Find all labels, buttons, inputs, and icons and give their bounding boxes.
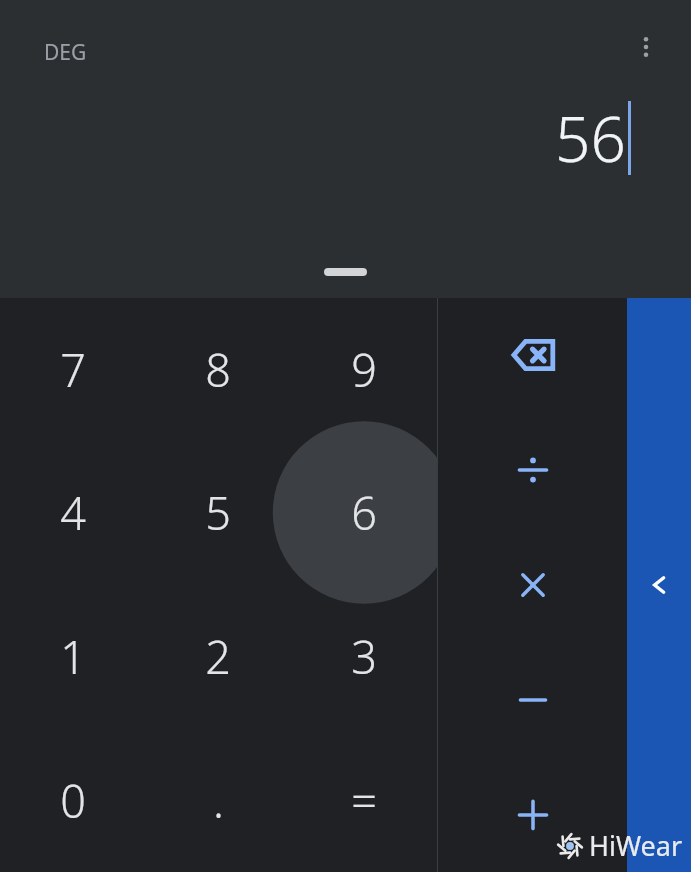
staticText: . (213, 770, 224, 831)
button[interactable]: 5 (145, 441, 291, 584)
staticText: 4 (60, 482, 86, 543)
staticText: 8 (205, 339, 231, 400)
button[interactable]: Multiply (438, 527, 627, 642)
staticText: 9 (351, 339, 377, 400)
button[interactable]: Subtract (438, 642, 627, 757)
button[interactable]: Divide (438, 412, 627, 527)
button[interactable]: Back (627, 298, 691, 872)
button[interactable]: Backspace (438, 298, 627, 412)
staticText: = (351, 770, 377, 831)
button[interactable]: 9 (291, 298, 437, 441)
staticText: 2 (205, 626, 231, 687)
staticText: 7 (60, 339, 86, 400)
button[interactable]: . (145, 728, 291, 872)
button[interactable]: 1 (0, 584, 145, 728)
staticText: 0 (60, 770, 86, 831)
staticText: 5 (205, 482, 231, 543)
button[interactable]: 4 (0, 441, 145, 584)
button[interactable]: 3 (291, 584, 437, 728)
staticText: DEG (44, 38, 87, 67)
button[interactable]: Drag handle (318, 262, 373, 282)
button[interactable]: DEG (30, 30, 101, 75)
button[interactable]: 7 (0, 298, 145, 441)
staticText: 3 (351, 626, 377, 687)
staticText: 1 (60, 626, 86, 687)
staticText: HiWear (589, 827, 683, 864)
button[interactable]: 6 (291, 441, 437, 584)
staticText: 6 (351, 482, 377, 543)
button[interactable]: = (291, 728, 437, 872)
button[interactable]: 0 (0, 728, 145, 872)
button[interactable]: 8 (145, 298, 291, 441)
button[interactable]: Add (438, 757, 627, 872)
button[interactable]: More options (621, 22, 671, 72)
button[interactable]: 2 (145, 584, 291, 728)
staticText: 56 (555, 96, 626, 180)
